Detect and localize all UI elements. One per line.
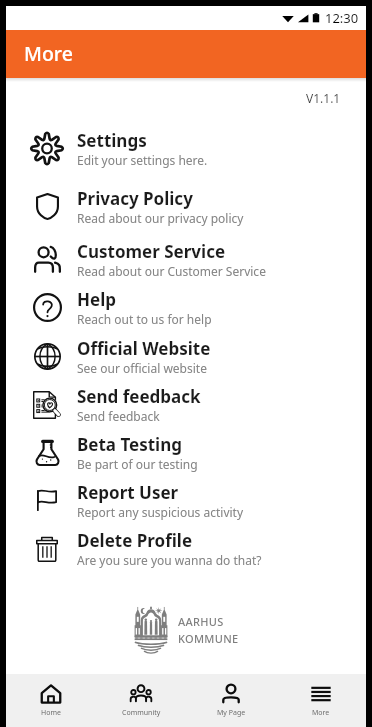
staticText: Customer Service [77, 240, 226, 263]
staticText: Send feedback [77, 385, 201, 408]
button[interactable]: Beta Testing [6, 428, 366, 477]
button[interactable]: Settings [6, 120, 366, 177]
button[interactable]: Community [96, 683, 186, 718]
button[interactable]: Official Website [6, 332, 366, 381]
staticText: More [24, 40, 73, 67]
staticText: 12:30 [325, 9, 359, 27]
staticText: KOMMUNE [178, 631, 239, 646]
staticText: Report User [77, 481, 179, 504]
staticText: Are you sure you wanna do that? [77, 552, 262, 568]
staticText: Community [122, 708, 161, 718]
staticText: Edit your settings here. [77, 152, 208, 168]
staticText: Beta Testing [77, 433, 182, 456]
staticText: Read about our Customer Service [77, 263, 266, 279]
staticText: See our official website [77, 360, 207, 376]
staticText: Reach out to us for help [77, 311, 212, 327]
button[interactable]: Customer Service [6, 236, 366, 283]
button[interactable]: Privacy Policy [6, 177, 366, 236]
staticText: Home [41, 708, 61, 718]
staticText: V1.1.1 [306, 90, 341, 106]
button[interactable]: Help [6, 283, 366, 332]
staticText: Settings [77, 129, 147, 152]
staticText: My Page [217, 708, 246, 718]
button[interactable]: My Page [186, 683, 276, 718]
button[interactable]: Send feedback [6, 381, 366, 428]
staticText: Delete Profile [77, 529, 193, 552]
staticText: Send feedback [77, 408, 160, 424]
button[interactable]: Report User [6, 477, 366, 524]
staticText: Read about our privacy policy [77, 210, 244, 226]
button[interactable]: Home [6, 683, 96, 718]
button[interactable]: Delete Profile [6, 524, 366, 572]
staticText: Privacy Policy [77, 187, 193, 210]
staticText: Help [77, 288, 116, 311]
button[interactable]: More [276, 683, 366, 718]
staticText: More [312, 708, 330, 718]
staticText: Report any suspicious activity [77, 504, 244, 520]
staticText: Be part of our testing [77, 456, 198, 472]
staticText: AARHUS [178, 614, 224, 629]
staticText: Official Website [77, 337, 211, 360]
